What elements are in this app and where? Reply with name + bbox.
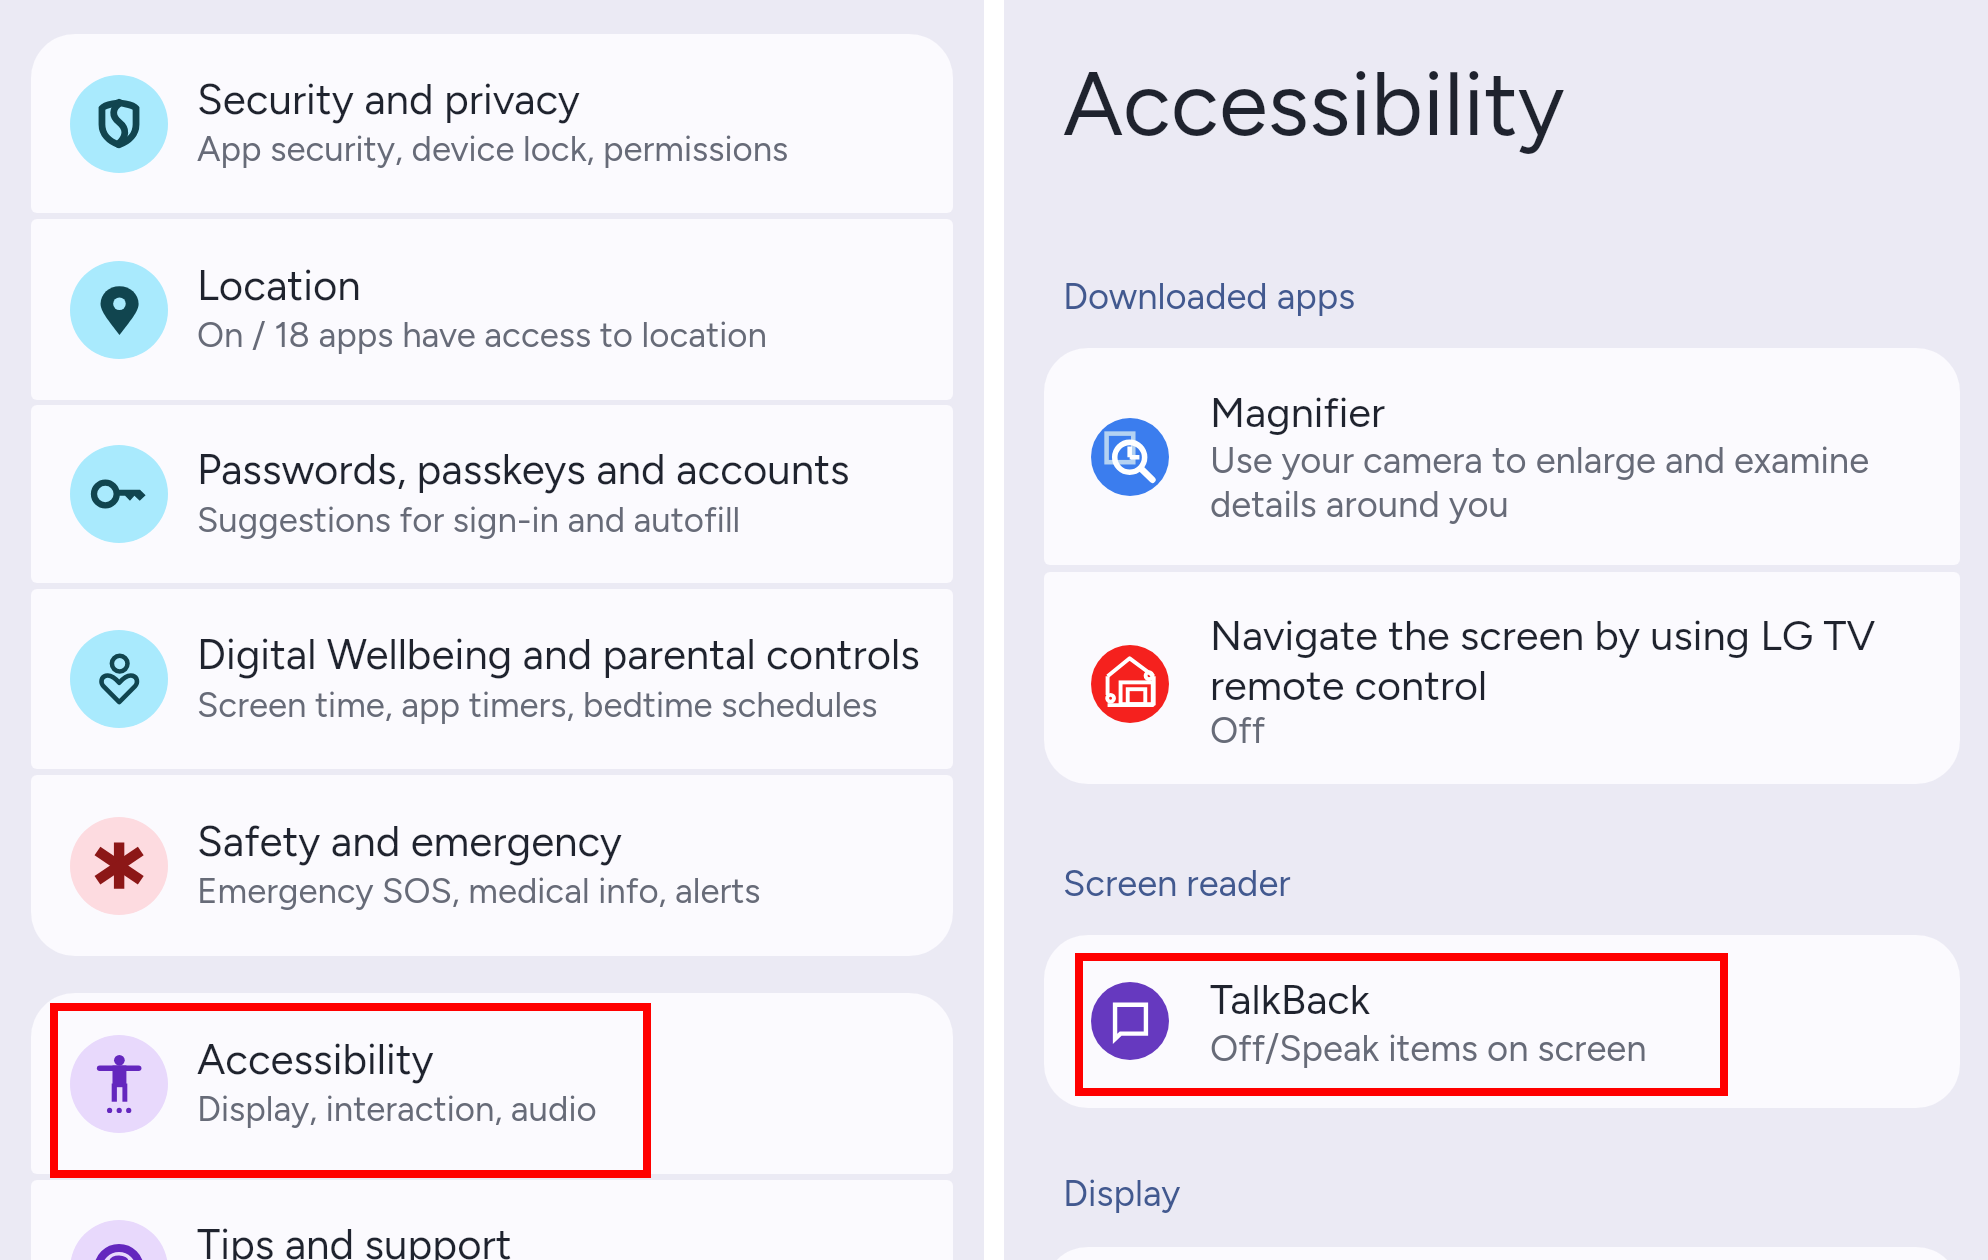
- staticText: remote control: [1210, 661, 1488, 711]
- staticText: Screen reader: [1063, 861, 1291, 905]
- other: LG TV remote app icon: [1091, 645, 1169, 723]
- staticText: details around you: [1210, 482, 1509, 526]
- staticText: Magnifier: [1210, 388, 1386, 438]
- staticText: Downloaded apps: [1063, 274, 1356, 318]
- staticText: Navigate the screen by using LG TV: [1210, 611, 1876, 661]
- staticText: Use your camera to enlarge and examine: [1210, 438, 1870, 482]
- button[interactable]: LG TV remote app icon: [1044, 572, 1960, 784]
- button[interactable]: Safety and emergency: [31, 775, 953, 956]
- button[interactable]: Security and privacy: [31, 34, 953, 213]
- staticText: Display: [1063, 1171, 1181, 1215]
- button[interactable]: Accessibility: [31, 993, 953, 1174]
- button[interactable]: TalkBack app icon: [1044, 935, 1960, 1108]
- staticText: On / 18 apps have access to location: [197, 314, 767, 356]
- staticText: Suggestions for sign-in and autofill: [197, 499, 741, 541]
- button[interactable]: Passwords, passkeys and accounts: [31, 405, 953, 583]
- staticText: Screen time, app timers, bedtime schedul…: [197, 684, 878, 726]
- staticText: Digital Wellbeing and parental controls: [197, 629, 920, 679]
- staticText: Passwords, passkeys and accounts: [197, 444, 850, 494]
- staticText: Off/Speak items on screen: [1210, 1026, 1647, 1070]
- staticText: Security and privacy: [197, 74, 580, 124]
- button[interactable]: Magnifier app icon: [1044, 348, 1960, 565]
- button[interactable]: Location: [31, 219, 953, 400]
- staticText: Display, interaction, audio: [197, 1088, 597, 1130]
- staticText: App security, device lock, permissions: [197, 128, 789, 170]
- staticText: Off: [1210, 708, 1266, 752]
- staticText: TalkBack: [1210, 975, 1370, 1025]
- staticText: Accessibility: [1063, 50, 1565, 157]
- button[interactable]: Display settings: [1044, 1247, 1960, 1260]
- staticText: Emergency SOS, medical info, alerts: [197, 870, 761, 912]
- other: Magnifier app icon: [1091, 418, 1169, 496]
- other: TalkBack app icon: [1091, 982, 1169, 1060]
- button[interactable]: Digital Wellbeing and parental controls: [31, 589, 953, 769]
- staticText: Tips and support: [197, 1219, 512, 1260]
- staticText: Location: [197, 260, 361, 310]
- staticText: Safety and emergency: [197, 816, 622, 866]
- staticText: Accessibility: [197, 1034, 434, 1084]
- button[interactable]: Tips and support: [31, 1180, 953, 1260]
